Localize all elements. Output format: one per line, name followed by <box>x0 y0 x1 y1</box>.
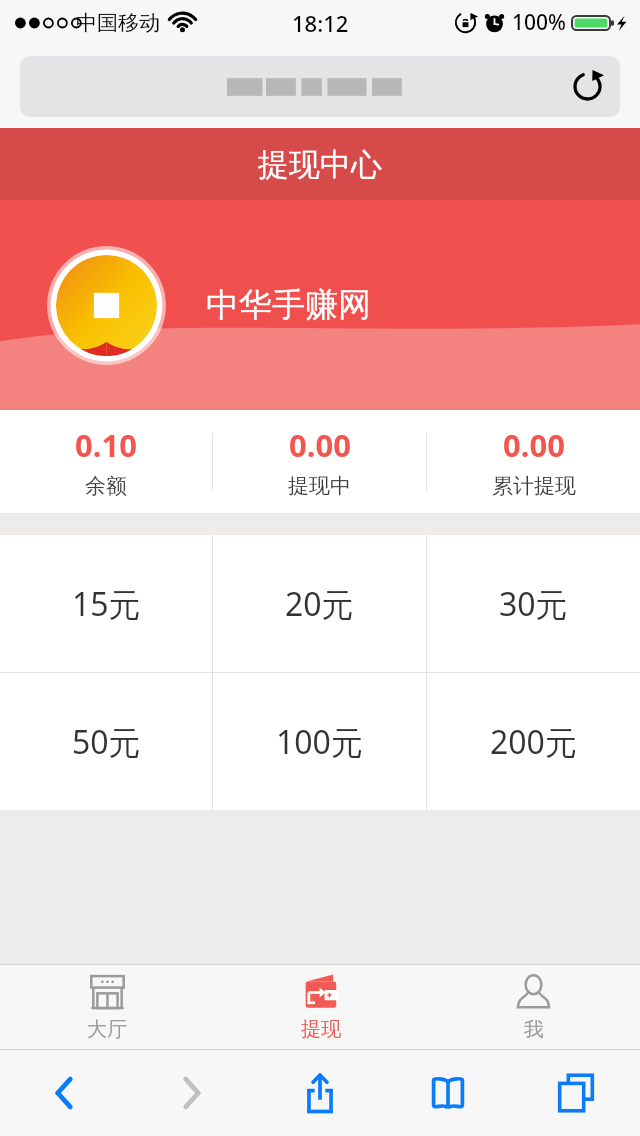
button[interactable]: Back <box>0 1050 128 1136</box>
button[interactable]: Bookmarks <box>384 1050 512 1136</box>
staticText: 我 <box>524 1017 544 1042</box>
staticText: 100% <box>512 8 566 37</box>
staticText: 中华手赚网 <box>206 284 371 326</box>
staticText: 0.00 <box>503 424 565 466</box>
staticText: 15元 <box>72 582 141 626</box>
button[interactable]: Forward <box>128 1050 256 1136</box>
staticText: 0.10 <box>75 424 137 466</box>
button[interactable]: 20元 <box>213 535 426 672</box>
button[interactable]: 我 <box>427 965 640 1049</box>
button[interactable]: Share <box>256 1050 384 1136</box>
other: Reload <box>571 70 604 103</box>
button[interactable]: 0.10 <box>0 410 212 513</box>
staticText: 提现中心 <box>258 145 382 184</box>
button[interactable]: 0.00 <box>427 410 640 513</box>
staticText: 200元 <box>490 720 577 764</box>
button[interactable]: 30元 <box>427 535 640 672</box>
staticText: 30元 <box>499 582 568 626</box>
staticText: 大厅 <box>87 1017 127 1042</box>
staticText: 余额 <box>85 473 127 499</box>
button[interactable]: 100元 <box>213 673 426 810</box>
button[interactable]: 大厅 <box>0 965 214 1049</box>
button[interactable]: 50元 <box>0 673 212 810</box>
button[interactable]: 15元 <box>0 535 212 672</box>
button[interactable]: 提现中心 <box>0 128 640 200</box>
staticText: 累计提现 <box>492 473 576 499</box>
button[interactable]: 提现 <box>214 965 427 1049</box>
button[interactable]: 0.00 <box>213 410 426 513</box>
button[interactable]: Address bar <box>20 56 620 117</box>
staticText: 100元 <box>276 720 363 764</box>
staticText: 0.00 <box>289 424 351 466</box>
button[interactable]: Tabs <box>512 1050 640 1136</box>
staticText: 50元 <box>72 720 141 764</box>
staticText: 提现中 <box>288 473 351 499</box>
staticText: 中国移动 <box>76 10 160 36</box>
staticText: 20元 <box>285 582 354 626</box>
staticText: 提现 <box>301 1017 341 1042</box>
button[interactable]: 200元 <box>427 673 640 810</box>
staticText: 18:12 <box>292 8 349 38</box>
